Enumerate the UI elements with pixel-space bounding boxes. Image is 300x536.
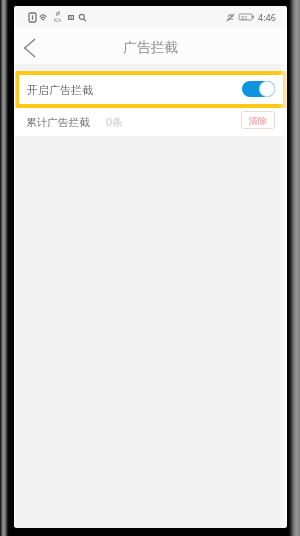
button[interactable]: 清除 [241,111,275,129]
button[interactable]: Back [14,28,44,64]
staticText: K/s [54,17,62,24]
staticText: 清除 [249,115,267,126]
button[interactable]: Toggle ad blocking [242,81,275,97]
staticText: 0条 [106,115,123,129]
staticText: 开启广告拦截 [27,83,93,97]
button[interactable]: 开启广告拦截 [15,71,287,108]
staticText: 累计广告拦截 [26,116,90,129]
staticText: 4:46 [258,11,276,23]
staticText: 82 [241,14,248,20]
staticText: 广告拦截 [123,39,179,56]
